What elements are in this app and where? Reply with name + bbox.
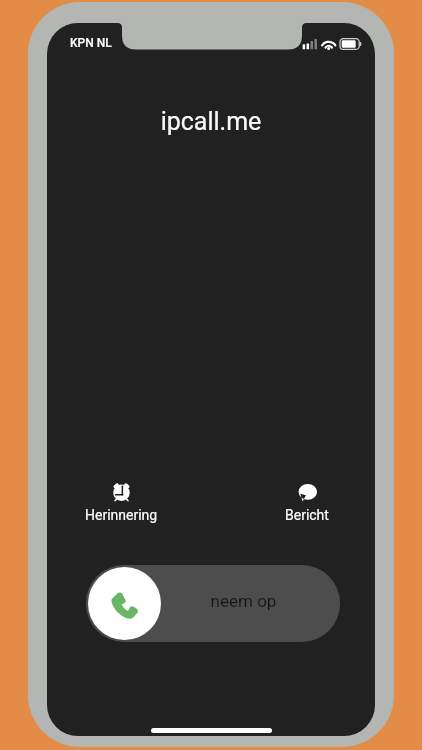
button[interactable]: Reminder [81, 451, 161, 537]
staticText: ipcall.me [47, 107, 375, 136]
button[interactable]: Message [267, 451, 347, 537]
staticText: Herinnering [85, 507, 158, 523]
other: Answer call [111, 592, 138, 619]
other: Reminder [112, 482, 131, 501]
staticText: Bericht [285, 507, 329, 523]
other: Message [298, 482, 317, 501]
staticText: neem op [152, 591, 335, 611]
staticText: KPN NL [70, 36, 112, 50]
button[interactable]: neem op [86, 565, 340, 642]
